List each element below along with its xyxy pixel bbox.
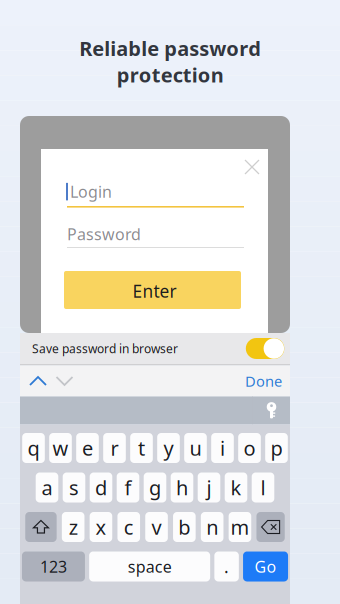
staticText: c: [124, 514, 134, 540]
staticText: a: [41, 474, 52, 501]
staticText: g: [149, 474, 161, 501]
button[interactable]: p: [265, 433, 288, 463]
button[interactable]: i: [211, 433, 234, 463]
button[interactable]: q: [22, 433, 45, 463]
staticText: Done: [245, 371, 282, 391]
staticText: i: [220, 435, 225, 461]
staticText: w: [52, 435, 68, 461]
staticText: v: [152, 514, 162, 540]
staticText: z: [69, 514, 78, 540]
button[interactable]: .: [214, 551, 239, 581]
staticText: x: [95, 514, 106, 540]
button[interactable]: b: [173, 512, 196, 542]
button[interactable]: y: [157, 433, 180, 463]
button[interactable]: e: [76, 433, 99, 463]
button[interactable]: x: [90, 512, 112, 542]
staticText: h: [176, 474, 188, 501]
button[interactable]: Done: [236, 370, 282, 392]
staticText: Enter: [132, 279, 176, 302]
button[interactable]: 123: [22, 551, 85, 581]
button[interactable]: s: [63, 472, 85, 502]
staticText: t: [138, 435, 145, 461]
button[interactable]: r: [103, 433, 126, 463]
button[interactable]: t: [130, 433, 153, 463]
staticText: j: [206, 474, 211, 501]
staticText: m: [230, 514, 249, 540]
button[interactable]: l: [252, 472, 274, 502]
button[interactable]: k: [225, 472, 247, 502]
staticText: Login: [70, 181, 112, 202]
button[interactable]: a: [36, 472, 58, 502]
button[interactable]: Enter: [64, 271, 241, 309]
button[interactable]: z: [62, 512, 84, 542]
button[interactable]: m: [229, 512, 251, 542]
button[interactable]: h: [171, 472, 193, 502]
staticText: u: [189, 435, 201, 461]
staticText: p: [270, 435, 282, 461]
staticText: r: [110, 435, 118, 461]
staticText: f: [124, 474, 131, 501]
staticText: k: [230, 474, 241, 501]
staticText: .: [224, 555, 229, 578]
staticText: b: [178, 514, 190, 540]
staticText: d: [95, 474, 107, 501]
staticText: l: [260, 474, 265, 501]
button[interactable]: f: [117, 472, 139, 502]
button[interactable]: Next field: [52, 369, 76, 393]
staticText: Password: [67, 223, 141, 245]
staticText: 123: [40, 556, 67, 577]
button[interactable]: Passwords: [253, 396, 290, 424]
button[interactable]: space: [89, 551, 210, 581]
staticText: s: [69, 474, 79, 501]
button[interactable]: u: [184, 433, 207, 463]
staticText: q: [27, 435, 39, 461]
staticText: y: [163, 435, 173, 461]
button[interactable]: g: [144, 472, 166, 502]
button[interactable]: j: [198, 472, 220, 502]
button[interactable]: w: [49, 433, 72, 463]
staticText: Go: [254, 556, 276, 577]
button[interactable]: d: [90, 472, 112, 502]
staticText: o: [243, 435, 255, 461]
staticText: n: [206, 514, 218, 540]
button[interactable]: v: [145, 512, 168, 542]
button[interactable]: Shift: [25, 512, 57, 542]
button[interactable]: c: [117, 512, 140, 542]
staticText: space: [128, 556, 172, 577]
button[interactable]: n: [201, 512, 223, 542]
button[interactable]: o: [238, 433, 261, 463]
staticText: Save password in browser: [32, 340, 178, 356]
button[interactable]: Delete: [256, 512, 285, 542]
staticText: e: [82, 435, 93, 461]
button[interactable]: Previous field: [26, 369, 50, 393]
button[interactable]: Close: [237, 152, 267, 182]
staticText: Reliable password protection: [79, 35, 261, 88]
button[interactable]: Go: [243, 551, 288, 581]
